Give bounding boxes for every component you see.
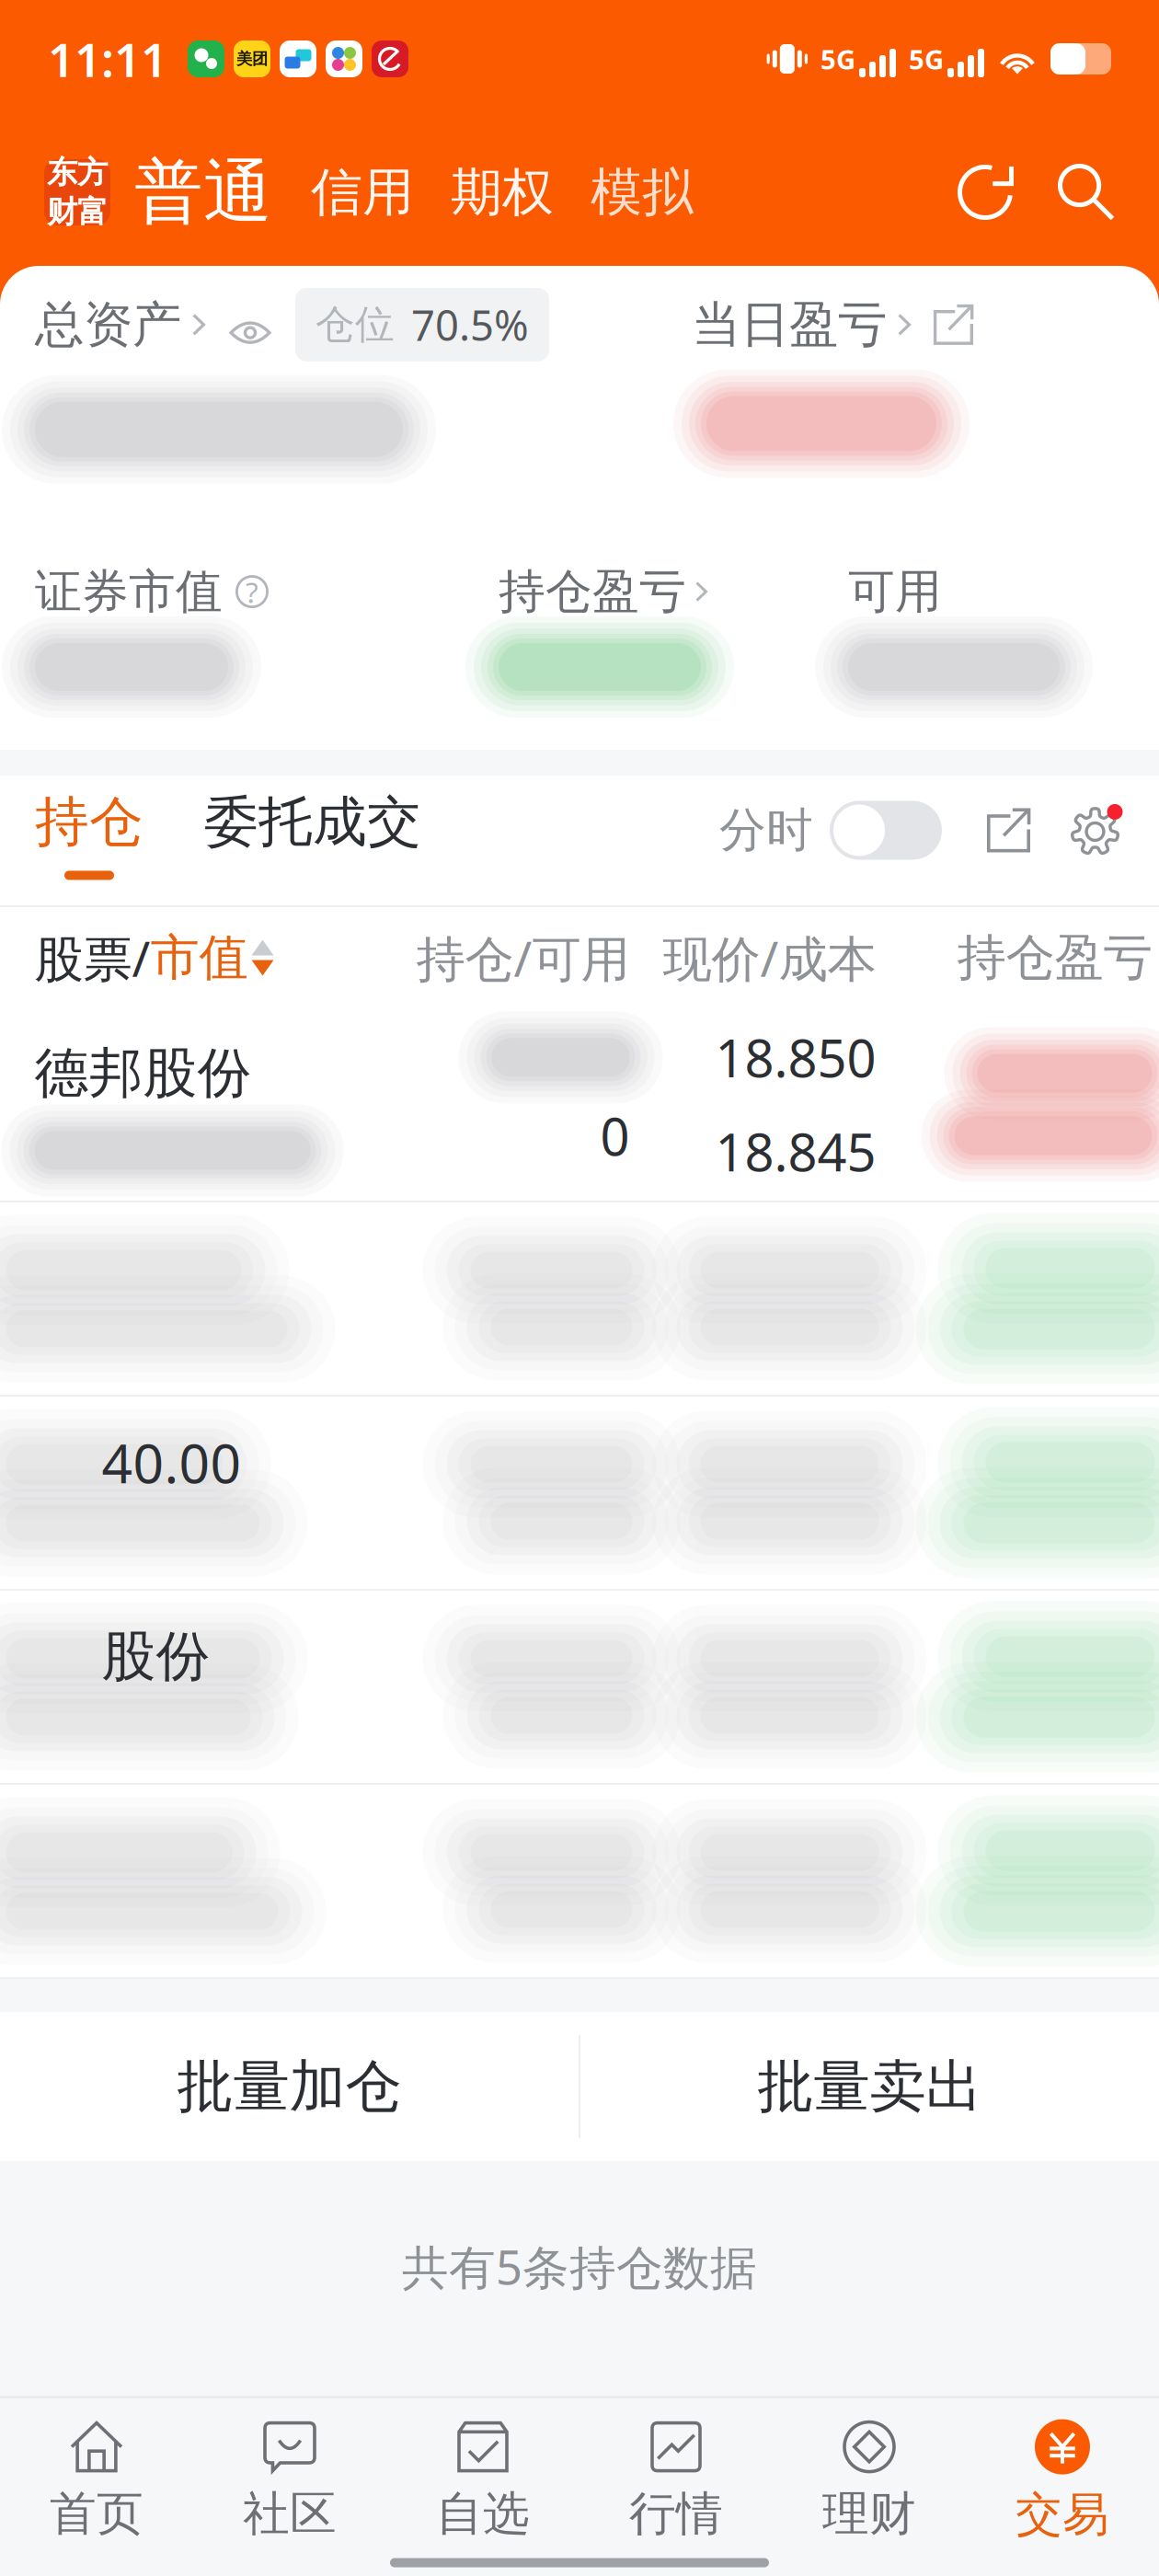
button[interactable]: 模拟 xyxy=(554,160,694,225)
staticText: 持仓 xyxy=(35,788,143,856)
button[interactable]: Refresh xyxy=(957,164,1014,221)
button[interactable]: 期权 xyxy=(414,160,554,225)
staticText: 5G xyxy=(909,40,944,77)
staticText: 批量卖出 xyxy=(757,2051,982,2122)
button[interactable]: 理财 xyxy=(773,2413,966,2551)
button[interactable]: 总资产 xyxy=(35,294,205,356)
staticText: 德邦股份 xyxy=(34,1039,252,1107)
staticText: 总资产 xyxy=(35,294,181,356)
button[interactable]: 社区 xyxy=(193,2413,386,2551)
button[interactable]: 当日盈亏 xyxy=(692,294,911,356)
staticText: 70.5% xyxy=(411,296,529,353)
staticText: 0 xyxy=(600,1101,630,1171)
button[interactable]: 交易 xyxy=(966,2413,1159,2551)
staticText: 普通 xyxy=(134,149,272,236)
staticText: 持仓盈亏 xyxy=(499,562,686,621)
staticText: 自选 xyxy=(436,2485,530,2543)
staticText: 批量加仓 xyxy=(177,2051,402,2122)
staticText: 仓位 xyxy=(316,300,395,349)
button[interactable]: 委托成交 xyxy=(143,788,421,893)
staticText: 股份 xyxy=(102,1622,210,1690)
button[interactable]: Settings xyxy=(1030,803,1124,858)
staticText: 当日盈亏 xyxy=(692,294,887,356)
staticText: 18.845 xyxy=(715,1116,876,1187)
staticText: 持仓盈亏 xyxy=(957,927,1152,989)
staticText: 持仓/可用 xyxy=(416,924,630,991)
staticText: 40.00 xyxy=(102,1426,241,1499)
staticText: 证券市值 xyxy=(35,562,223,621)
button[interactable]: Open daily P/L xyxy=(911,304,973,345)
staticText: 首页 xyxy=(50,2485,143,2543)
staticText: 东方 xyxy=(47,153,108,192)
staticText: 现价/成本 xyxy=(663,924,876,991)
staticText: 委托成交 xyxy=(204,788,421,856)
staticText: 社区 xyxy=(243,2485,337,2543)
staticText: 行情 xyxy=(629,2485,723,2543)
button[interactable]: 持仓 xyxy=(35,788,143,893)
staticText: 模拟 xyxy=(591,160,694,225)
button[interactable]: 行情 xyxy=(579,2413,773,2551)
staticText: 交易 xyxy=(1016,2485,1109,2544)
button[interactable]: 自选 xyxy=(386,2413,579,2551)
button[interactable]: 批量加仓 xyxy=(0,2012,579,2161)
button[interactable]: Search xyxy=(1014,164,1115,221)
staticText: 信用 xyxy=(311,160,414,225)
button[interactable]: 信用 xyxy=(272,160,414,225)
staticText: 分时 xyxy=(719,801,813,860)
staticText: 11:11 xyxy=(48,27,167,91)
staticText: 理财 xyxy=(822,2485,916,2543)
staticText: 可用 xyxy=(848,562,942,621)
button[interactable]: 批量卖出 xyxy=(580,2012,1159,2161)
button[interactable]: Expand xyxy=(942,808,1030,852)
staticText: 5G xyxy=(820,40,855,77)
staticText: 美团 xyxy=(236,49,268,69)
staticText: 期权 xyxy=(451,160,554,225)
staticText: 市值 xyxy=(150,927,248,989)
button[interactable]: 首页 xyxy=(0,2413,193,2551)
staticText: 18.850 xyxy=(715,1022,876,1092)
staticText: ? xyxy=(246,572,258,611)
staticText: 股票/ xyxy=(34,924,150,991)
staticText: 财富 xyxy=(47,193,108,231)
staticText: 共有5条持仓数据 xyxy=(402,2235,757,2298)
button[interactable]: Toggle balance visibility xyxy=(205,312,271,338)
button[interactable]: 持仓盈亏 xyxy=(499,562,707,621)
